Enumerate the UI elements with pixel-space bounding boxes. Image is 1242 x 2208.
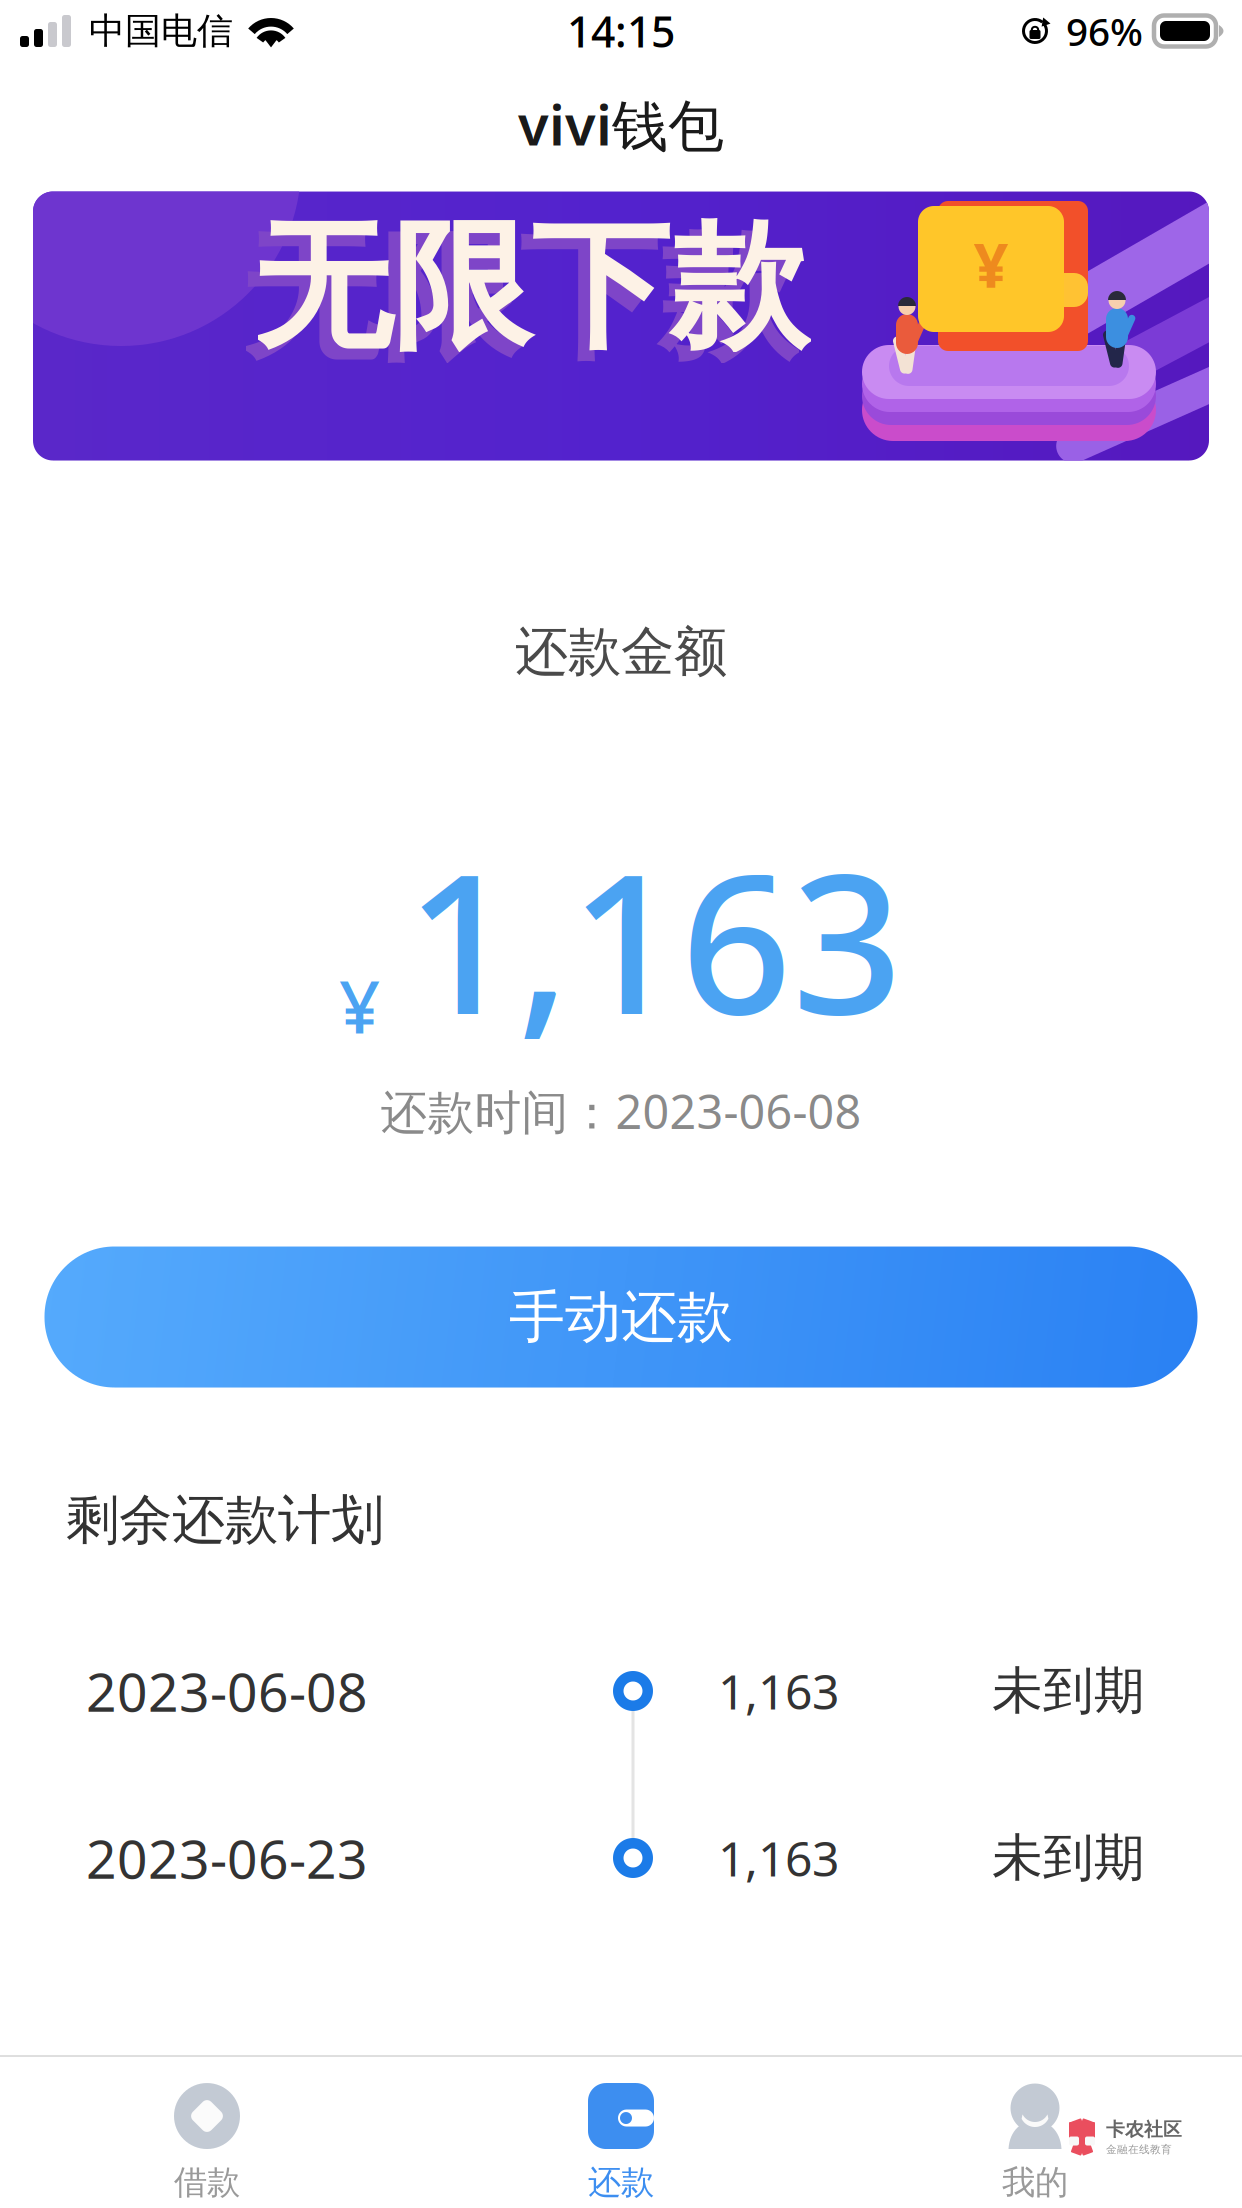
staticText: 1,163	[718, 1659, 839, 1723]
staticText: 还款	[588, 2162, 654, 2203]
staticText: ¥	[973, 223, 1008, 305]
staticText: 1,163	[718, 1826, 839, 1890]
staticText: 卡农社区	[1106, 2118, 1182, 2141]
staticText: 借款	[174, 2162, 240, 2203]
staticText: 剩余还款计划	[66, 1487, 384, 1553]
button[interactable]: 我的	[828, 2057, 1242, 2208]
staticText: 未到期	[992, 1827, 1145, 1889]
staticText: 金融在线教育	[1106, 2143, 1172, 2156]
staticText: 96%	[1066, 5, 1143, 57]
staticText: 还款金额	[515, 619, 727, 685]
staticText: 手动还款	[509, 1283, 733, 1351]
staticText: vivi钱包	[518, 87, 724, 161]
staticText: 14:15	[567, 3, 675, 59]
staticText: 2023-06-23	[86, 1823, 368, 1893]
staticText: 无限下款	[253, 202, 809, 372]
staticText: 未到期	[992, 1660, 1145, 1722]
staticText: 还款时间：2023-06-08	[380, 1080, 861, 1142]
button[interactable]: 手动还款	[44, 1246, 1197, 1387]
staticText: 1,163	[406, 811, 903, 1067]
staticText: 2023-06-08	[86, 1656, 368, 1726]
button[interactable]: 还款	[414, 2057, 828, 2208]
button[interactable]: 借款	[0, 2057, 414, 2208]
staticText: 我的	[1002, 2162, 1068, 2203]
staticText: 无限下款	[241, 213, 797, 383]
staticText: 中国电信	[89, 9, 233, 53]
staticText: ¥	[339, 958, 380, 1053]
